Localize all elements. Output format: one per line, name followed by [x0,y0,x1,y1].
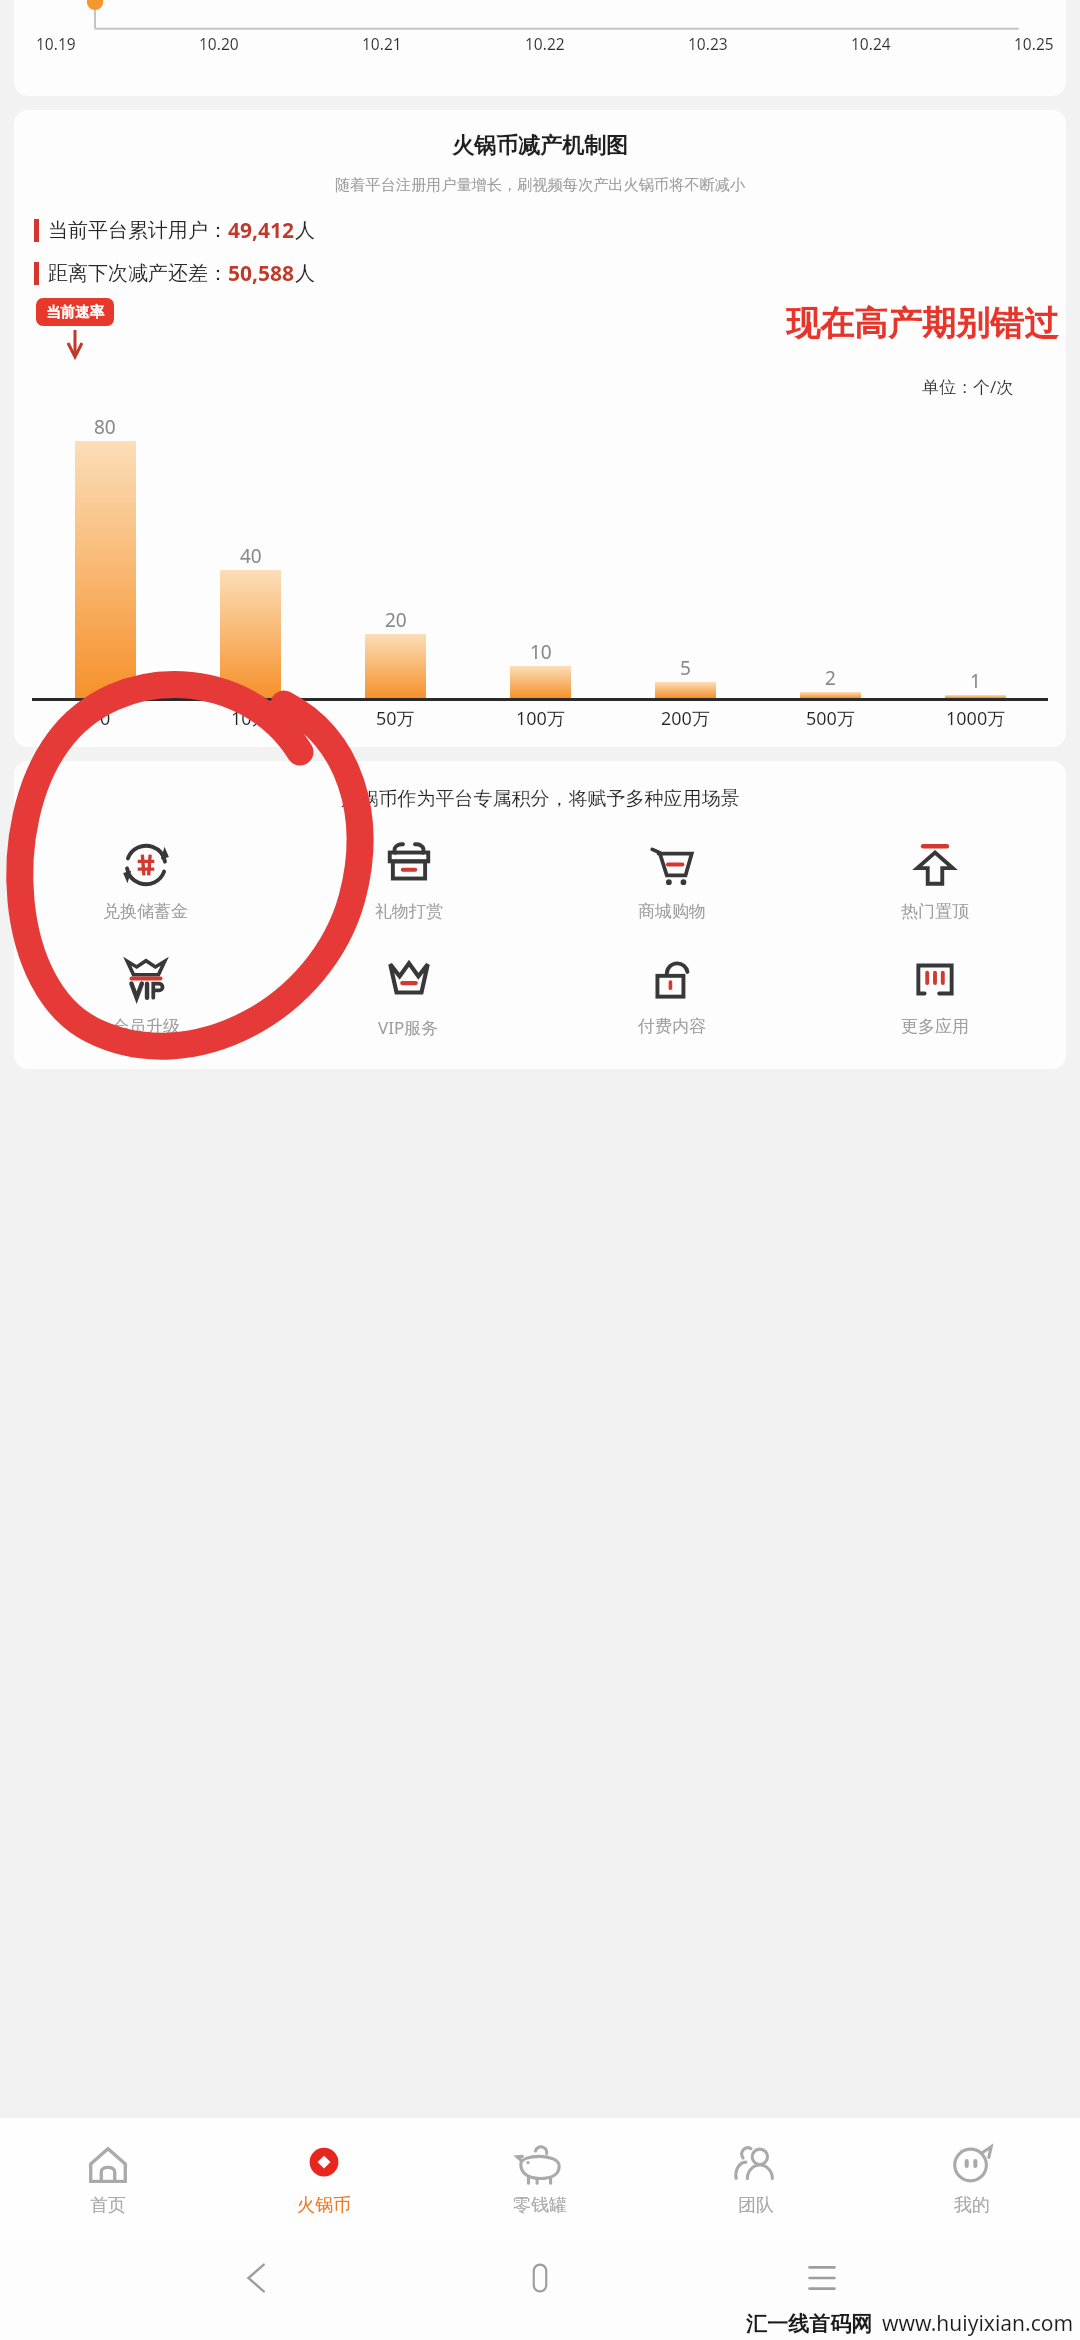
button[interactable]: 更多应用 [803,952,1066,1039]
staticText: 现在高产期别错过 [786,302,1058,345]
button[interactable]: Home [516,2254,564,2302]
staticText: www.huiyixian.com [882,2309,1074,2338]
staticText: 5 [680,655,691,681]
staticText: 2 [825,665,836,691]
staticText: 49,412 [228,216,295,245]
staticText: 汇一线首码网 [746,2311,872,2337]
staticText: 会员升级 [112,1016,180,1037]
staticText: VIP服务 [378,1016,439,1039]
staticText: 当前平台累计用户： [48,218,228,243]
button[interactable]: 商城购物 [540,837,803,924]
staticText: 礼物打赏 [375,901,443,922]
staticText: 10.23 [688,33,728,54]
button[interactable]: 火锅币 [216,2118,432,2240]
staticText: 10 [530,639,552,665]
staticText: 80 [94,414,116,440]
staticText: 随着平台注册用户量增长，刷视频每次产出火锅币将不断减小 [16,175,1064,194]
staticText: 50万 [376,706,415,731]
button[interactable]: 兑换储蓄金 [14,837,277,924]
staticText: 1 [970,668,981,694]
staticText: 更多应用 [901,1016,969,1037]
staticText: 40 [240,543,262,569]
staticText: 0 [100,706,111,731]
staticText: 人 [295,261,315,286]
button[interactable]: 当前速率 [36,298,114,326]
staticText: 火锅币作为平台专属积分，将赋予多种应用场景 [14,787,1066,811]
button[interactable]: 热门置顶 [803,837,1066,924]
button[interactable]: VIP服务 [277,952,540,1041]
button[interactable]: 团队 [648,2118,864,2240]
staticText: 10.19 [36,33,76,54]
staticText: 单位：个/次 [922,375,1014,398]
button[interactable]: 付费内容 [540,952,803,1039]
staticText: 兑换储蓄金 [103,901,188,922]
button[interactable]: 礼物打赏 [277,837,540,924]
button[interactable]: 会员升级 [14,952,277,1039]
staticText: 零钱罐 [513,2194,567,2217]
button[interactable]: Back [234,2254,282,2302]
staticText: 距离下次减产还差： [48,261,228,286]
staticText: 500万 [806,706,855,731]
staticText: 100万 [516,706,565,731]
staticText: 热门置顶 [901,901,969,922]
staticText: 团队 [738,2194,774,2217]
staticText: 商城购物 [638,901,706,922]
staticText: 火锅币 [297,2194,351,2217]
staticText: 首页 [90,2194,126,2217]
staticText: 10万 [231,706,270,731]
button[interactable]: 零钱罐 [432,2118,648,2240]
staticText: 10.25 [1014,33,1054,54]
staticText: 1000万 [946,706,1006,731]
staticText: 当前速率 [46,303,104,321]
staticText: 我的 [954,2194,990,2217]
staticText: 火锅币减产机制图 [14,132,1066,160]
staticText: 50,588 [228,259,295,288]
staticText: 10.24 [851,33,891,54]
staticText: 付费内容 [638,1016,706,1037]
button[interactable]: 首页 [0,2118,216,2240]
staticText: 200万 [661,706,710,731]
button[interactable]: 我的 [864,2118,1080,2240]
button[interactable]: Recent apps [798,2254,846,2302]
staticText: 人 [295,218,315,243]
staticText: 10.21 [362,33,402,54]
staticText: 20 [385,607,407,633]
staticText: 10.22 [525,33,565,54]
staticText: 10.20 [199,33,239,54]
